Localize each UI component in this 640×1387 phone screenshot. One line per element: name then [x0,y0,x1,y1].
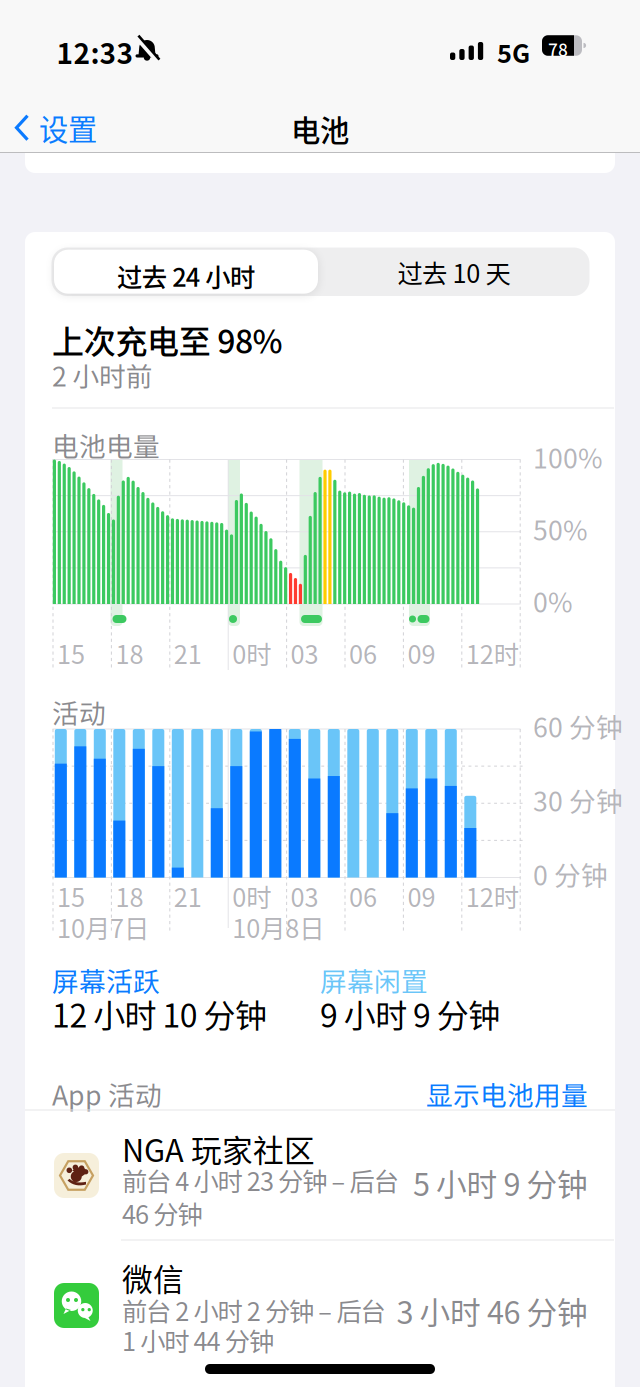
staticText: 3 小时 46 分钟 [396,1289,588,1332]
staticText: 前台 2 小时 2 分钟 – 后台 [122,1292,386,1328]
staticText: 15 [57,878,85,914]
staticText: 06 [349,635,377,671]
staticText: 100% [533,438,603,476]
staticText: 06 [349,878,377,914]
button[interactable]: NGA 玩家社区 [25,1124,615,1240]
staticText: 12时 [466,635,519,671]
staticText: 过去 24 小时 [117,258,255,293]
staticText: 18 [115,878,143,914]
staticText: 过去 10 天 [397,254,511,290]
staticText: 10月7日 [57,909,149,945]
button[interactable]: 设置 [14,107,97,148]
staticText: 电池电量 [52,426,160,464]
staticText: 0 分钟 [533,855,608,893]
staticText: 设置 [39,107,97,148]
staticText: 1 小时 44 分钟 [122,1322,274,1358]
staticText: 03 [291,635,319,671]
staticText: 21 [174,635,202,671]
staticText: 09 [407,878,435,914]
staticText: NGA 玩家社区 [122,1127,315,1170]
staticText: 60 分钟 [533,707,623,745]
staticText: 5 小时 9 分钟 [413,1161,588,1204]
staticText: 78 [548,37,568,61]
staticText: 上次充电至 98% [52,317,283,362]
staticText: 活动 [52,693,106,731]
staticText: App 活动 [52,1075,162,1113]
staticText: 46 分钟 [122,1195,202,1231]
staticText: 0% [533,582,573,620]
staticText: 21 [174,878,202,914]
staticText: 5G [497,34,530,70]
staticText: 微信 [122,1256,184,1299]
staticText: 10月8日 [232,909,324,945]
staticText: 12时 [466,878,519,914]
button[interactable]: 微信 [25,1253,615,1386]
staticText: 显示电池用量 [426,1075,588,1113]
staticText: 0时 [232,878,271,914]
staticText: 18 [115,635,143,671]
staticText: 03 [291,878,319,914]
staticText: 30 分钟 [533,781,623,819]
staticText: 12 小时 10 分钟 [52,991,267,1036]
staticText: 屏幕闲置 [320,961,428,999]
staticText: 15 [57,635,85,671]
button[interactable]: 过去 24 小时 [54,250,318,294]
staticText: 0时 [232,635,271,671]
button[interactable]: 显示电池用量 [388,1075,588,1113]
staticText: 12:33 [56,32,133,71]
staticText: 电池 [291,108,349,149]
staticText: 屏幕活跃 [52,961,160,999]
staticText: 9 小时 9 分钟 [320,991,500,1036]
button[interactable]: 过去 10 天 [319,250,589,294]
staticText: 09 [407,635,435,671]
staticText: 前台 4 小时 23 分钟 – 后台 [122,1162,399,1198]
staticText: 2 小时前 [52,356,153,394]
staticText: 50% [533,510,588,548]
